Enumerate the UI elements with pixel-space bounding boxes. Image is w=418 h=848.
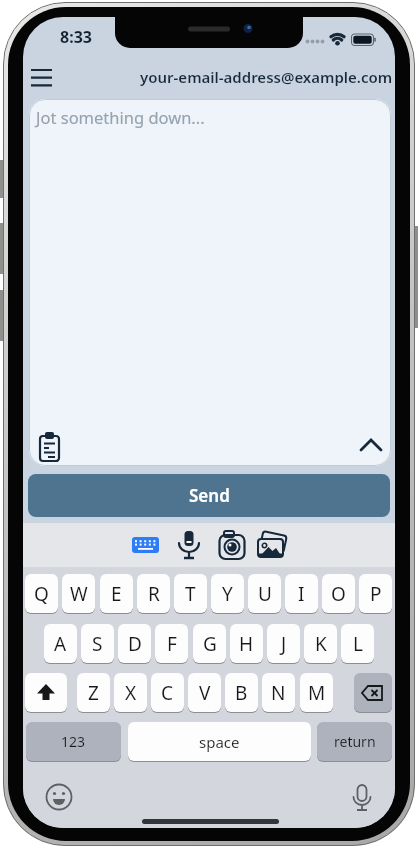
button[interactable]: U xyxy=(248,574,281,613)
button[interactable]: R xyxy=(137,574,170,613)
button[interactable]: Q xyxy=(25,574,58,613)
button[interactable]: F xyxy=(155,624,188,663)
staticText: I xyxy=(298,581,305,607)
staticText: K xyxy=(315,631,327,657)
staticText: Q xyxy=(34,581,49,607)
button[interactable]: T xyxy=(174,574,207,613)
button[interactable]: return xyxy=(317,722,392,761)
button[interactable]: N xyxy=(262,673,295,712)
button[interactable]: V xyxy=(188,673,221,712)
button[interactable]: L xyxy=(341,624,374,663)
staticText: 8:33 xyxy=(60,26,92,48)
button[interactable]: D xyxy=(118,624,151,663)
button[interactable]: M xyxy=(300,673,333,712)
staticText: space xyxy=(199,732,240,752)
staticText: W xyxy=(70,581,88,607)
button[interactable]: H xyxy=(230,624,263,663)
staticText: T xyxy=(185,581,196,607)
button[interactable]: Z xyxy=(77,673,110,712)
staticText: B xyxy=(235,680,248,706)
button[interactable]: Jot something down... xyxy=(29,99,391,466)
button[interactable] xyxy=(255,528,289,562)
staticText: V xyxy=(199,680,211,706)
button[interactable] xyxy=(25,63,59,93)
staticText: C xyxy=(161,680,174,706)
button[interactable]: G xyxy=(193,624,226,663)
button[interactable] xyxy=(129,528,163,562)
staticText: return xyxy=(334,732,376,751)
staticText: L xyxy=(353,631,363,657)
staticText: U xyxy=(258,581,272,607)
button[interactable] xyxy=(25,673,67,712)
staticText: Jot something down... xyxy=(36,106,205,128)
staticText: D xyxy=(128,631,142,657)
button[interactable]: Y xyxy=(211,574,244,613)
staticText: O xyxy=(331,581,346,607)
button[interactable] xyxy=(215,528,249,562)
button[interactable]: 123 xyxy=(26,722,121,761)
button[interactable] xyxy=(40,778,78,816)
staticText: E xyxy=(111,581,122,607)
button[interactable]: J xyxy=(267,624,300,663)
button[interactable] xyxy=(33,428,67,464)
staticText: A xyxy=(54,631,67,657)
button[interactable]: B xyxy=(225,673,258,712)
button[interactable] xyxy=(354,673,392,712)
button[interactable] xyxy=(172,528,206,562)
staticText: R xyxy=(148,581,160,607)
staticText: Y xyxy=(222,581,233,607)
staticText: J xyxy=(281,631,287,657)
button[interactable]: P xyxy=(359,574,392,613)
button[interactable]: S xyxy=(81,624,114,663)
button[interactable]: O xyxy=(322,574,355,613)
staticText: your-email-address@example.com xyxy=(140,67,393,87)
button[interactable]: Send xyxy=(28,474,390,517)
button[interactable]: space xyxy=(128,722,311,761)
staticText: M xyxy=(308,680,326,706)
staticText: 123 xyxy=(61,732,86,751)
button[interactable]: E xyxy=(100,574,133,613)
staticText: X xyxy=(125,680,137,706)
button[interactable]: X xyxy=(114,673,147,712)
staticText: F xyxy=(167,631,177,657)
button[interactable]: W xyxy=(62,574,95,613)
button[interactable]: A xyxy=(44,624,77,663)
button[interactable] xyxy=(343,778,381,816)
staticText: Z xyxy=(88,680,99,706)
staticText: N xyxy=(271,680,286,706)
button[interactable] xyxy=(354,430,388,462)
button[interactable]: K xyxy=(304,624,337,663)
staticText: G xyxy=(203,631,217,657)
staticText: Send xyxy=(189,484,230,507)
button[interactable]: C xyxy=(151,673,184,712)
button[interactable]: I xyxy=(285,574,318,613)
staticText: S xyxy=(92,631,103,657)
staticText: P xyxy=(370,581,382,607)
staticText: H xyxy=(239,631,254,657)
